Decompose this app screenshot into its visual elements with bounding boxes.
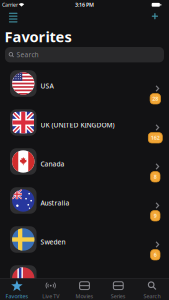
button[interactable]: Live TV [34, 279, 68, 300]
staticText: 9 [154, 212, 157, 219]
button[interactable]: Add [149, 10, 161, 22]
staticText: Movies [75, 293, 93, 300]
button[interactable]: Favorites [0, 279, 34, 300]
staticText: Canada [40, 160, 64, 168]
button[interactable]: Sweden [0, 222, 169, 261]
staticText: USA [40, 82, 53, 90]
staticText: Series [111, 293, 126, 300]
button[interactable]: USA [0, 66, 169, 105]
staticText: 3:16 PM [75, 1, 94, 8]
staticText: Favorites [4, 27, 71, 46]
staticText: 162 [151, 134, 160, 141]
staticText: Carrier [2, 1, 18, 8]
staticText: 8 [154, 173, 157, 180]
staticText: Search [144, 293, 161, 300]
staticText: 6 [154, 251, 157, 258]
button[interactable]: UK (UNITED KINGDOM) [0, 105, 169, 144]
staticText: UK (UNITED KINGDOM) [40, 121, 114, 129]
button[interactable]: Movies [68, 279, 101, 300]
button[interactable]: Canada [0, 144, 169, 183]
staticText: 28 [152, 95, 158, 102]
button[interactable]: Series [101, 279, 135, 300]
button[interactable]: Australia [0, 183, 169, 222]
staticText: Australia [40, 199, 69, 207]
staticText: Sweden [40, 238, 65, 246]
staticText: 4 [154, 290, 157, 297]
button[interactable]: Search [135, 279, 169, 300]
staticText: Search [16, 50, 38, 59]
button[interactable]: Menu [6, 11, 20, 25]
staticText: Norway [40, 277, 65, 285]
staticText: Live TV [42, 293, 59, 300]
button[interactable]: Norway [0, 261, 169, 300]
button[interactable]: Search [5, 47, 164, 62]
staticText: Favorites [5, 293, 28, 300]
